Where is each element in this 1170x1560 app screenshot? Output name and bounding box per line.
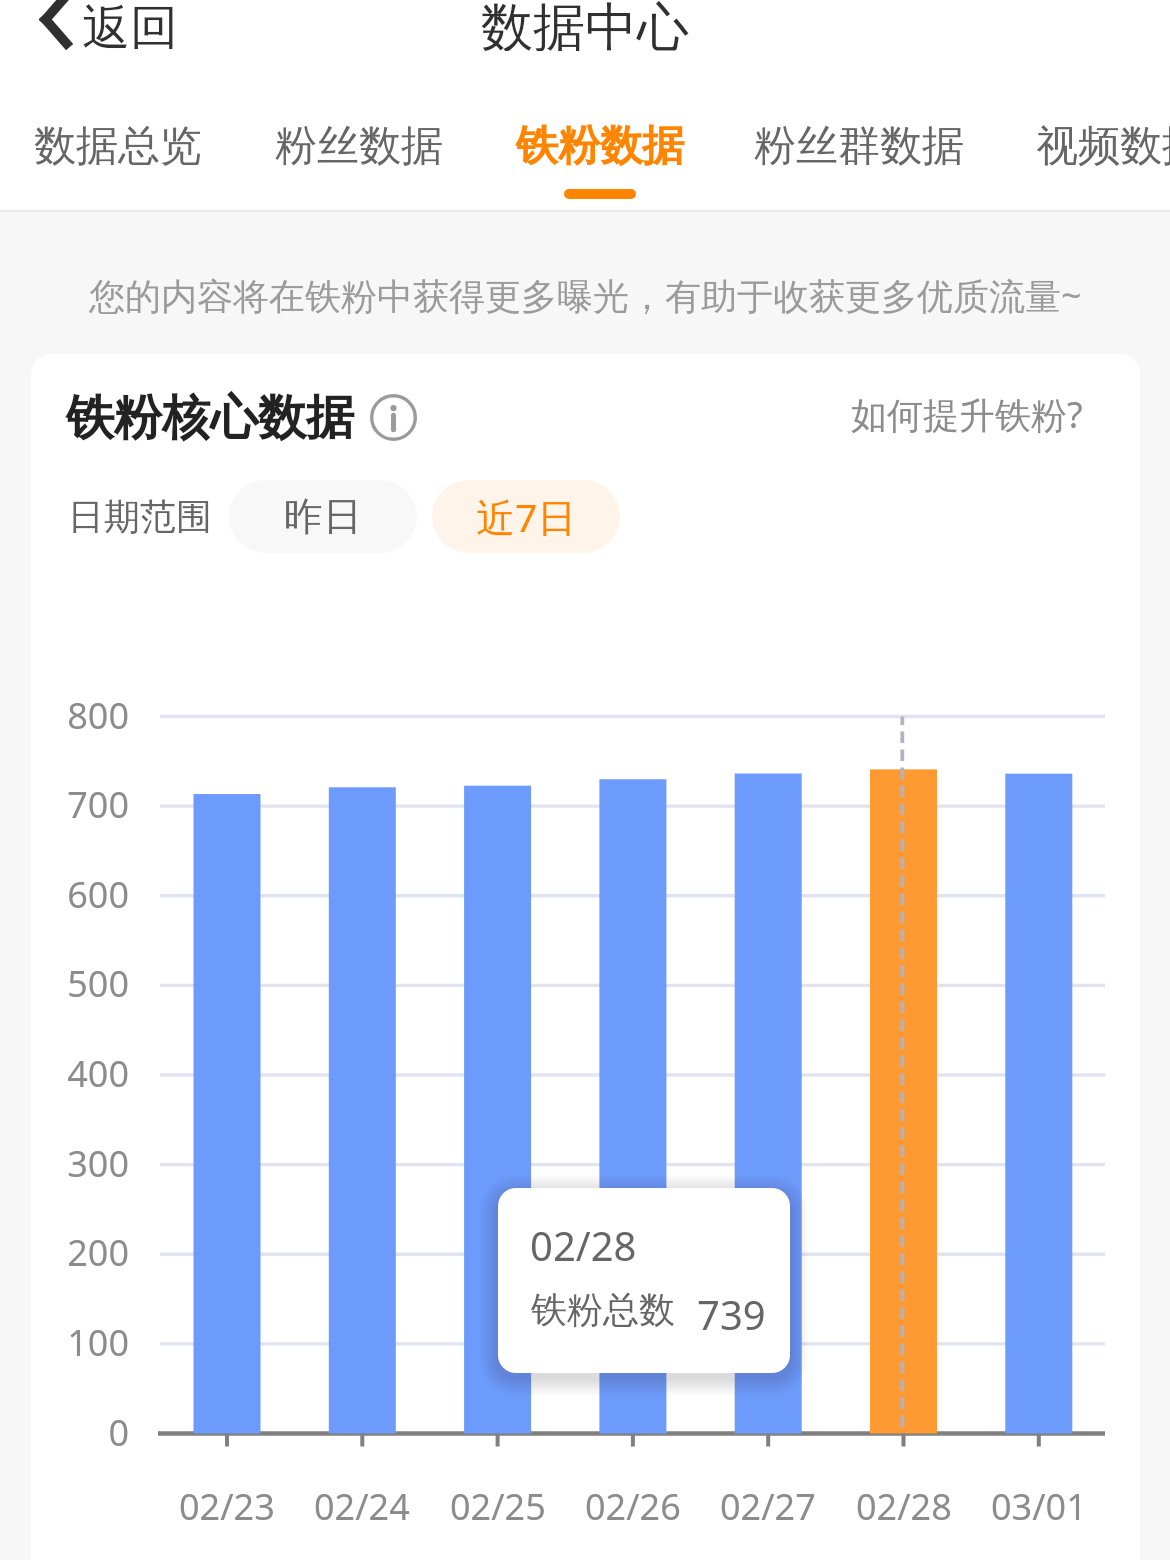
button[interactable]: 数据总览 [33,110,203,182]
staticText: 0 [108,1408,129,1457]
staticText: 700 [67,780,129,829]
staticText: 100 [67,1318,129,1367]
staticText: 粉丝数据 [275,120,443,173]
staticText: 02/27 [720,1482,816,1531]
staticText: 昨日 [284,492,362,541]
staticText: 400 [67,1049,129,1098]
staticText: 02/24 [314,1482,410,1531]
staticText: 数据中心 [481,0,689,51]
staticText: 02/28 [856,1482,952,1531]
staticText: 03/01 [991,1482,1087,1531]
button[interactable]: 铁粉核心数据说明 [370,394,417,441]
button[interactable]: 如何提升铁粉? [851,390,1083,439]
staticText: 02/25 [450,1482,546,1531]
staticText: 数据总览 [34,120,202,173]
button[interactable]: 昨日 [229,480,417,553]
staticText: 返回 [82,0,178,58]
button[interactable]: 返回 [22,0,192,68]
button[interactable]: 粉丝群数据 [754,110,964,182]
staticText: 铁粉总数 [531,1287,675,1332]
staticText: 视频数据 [1036,120,1170,173]
staticText: 02/26 [585,1482,681,1531]
button[interactable]: 视频数据 [1035,110,1170,182]
staticText: 铁粉核心数据 [66,388,354,448]
button[interactable]: 近7日 [432,480,620,553]
staticText: 粉丝群数据 [754,120,964,173]
staticText: 如何提升铁粉? [851,390,1083,439]
staticText: 600 [67,870,129,919]
staticText: 铁粉数据 [516,120,684,173]
button[interactable]: 粉丝数据 [274,110,444,182]
button[interactable]: 铁粉数据 [515,110,685,182]
staticText: 200 [67,1228,129,1277]
staticText: 500 [67,959,129,1008]
staticText: 02/23 [179,1482,275,1531]
staticText: 739 [697,1287,766,1341]
staticText: 您的内容将在铁粉中获得更多曝光，有助于收获更多优质流量~ [89,271,1082,320]
staticText: 近7日 [476,490,577,543]
staticText: 800 [67,691,129,740]
staticText: 日期范围 [68,494,212,539]
staticText: 300 [67,1139,129,1188]
staticText: 02/28 [530,1218,637,1272]
